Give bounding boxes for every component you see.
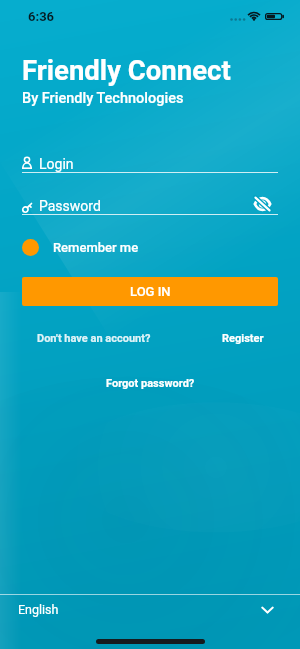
staticText: Register [222,332,264,345]
button[interactable]: LOG IN [22,277,278,306]
staticText: By Friendly Technologies [22,90,184,107]
staticText: Password [39,198,101,214]
staticText: Forgot password? [106,377,195,390]
button[interactable]: English [0,595,300,625]
button[interactable]: Don't have an account? [23,327,165,350]
staticText: Friendly Connect [22,54,231,86]
staticText: Login [39,156,74,172]
button[interactable]: Register [208,327,278,350]
staticText: Remember me [53,240,139,255]
button[interactable]: Show password [254,197,271,211]
button[interactable]: Remember me [22,239,139,256]
staticText: 6:36 [28,9,55,24]
staticText: LOG IN [130,284,171,299]
staticText: English [18,602,59,617]
button[interactable]: Forgot password? [92,372,209,395]
other: Change language [261,606,274,614]
staticText: Don't have an account? [37,332,151,345]
